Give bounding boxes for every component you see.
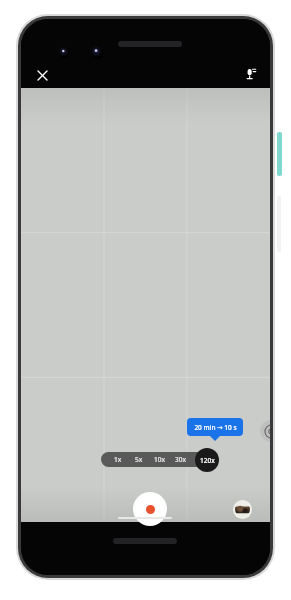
staticText: 120x bbox=[200, 456, 215, 465]
button[interactable]: 20 min → 10 s bbox=[187, 418, 243, 436]
button[interactable]: 10x bbox=[149, 452, 170, 467]
staticText: 30x bbox=[175, 455, 186, 464]
button[interactable]: Gallery bbox=[233, 500, 252, 519]
staticText: 5x bbox=[135, 455, 143, 464]
staticText: 10x bbox=[154, 455, 165, 464]
staticText: 20 min → 10 s bbox=[194, 423, 237, 432]
button[interactable]: 5x bbox=[128, 452, 149, 467]
button[interactable]: Close bbox=[31, 64, 53, 86]
button[interactable]: Record bbox=[133, 492, 167, 526]
button[interactable]: Microphone off bbox=[239, 63, 261, 85]
button[interactable]: 1x bbox=[107, 452, 128, 467]
staticText: 1x bbox=[114, 455, 122, 464]
button[interactable]: 30x bbox=[170, 452, 191, 467]
button[interactable]: 120x bbox=[195, 448, 219, 472]
button[interactable]: Power bbox=[277, 132, 282, 176]
button[interactable]: Switch camera bbox=[260, 420, 270, 442]
